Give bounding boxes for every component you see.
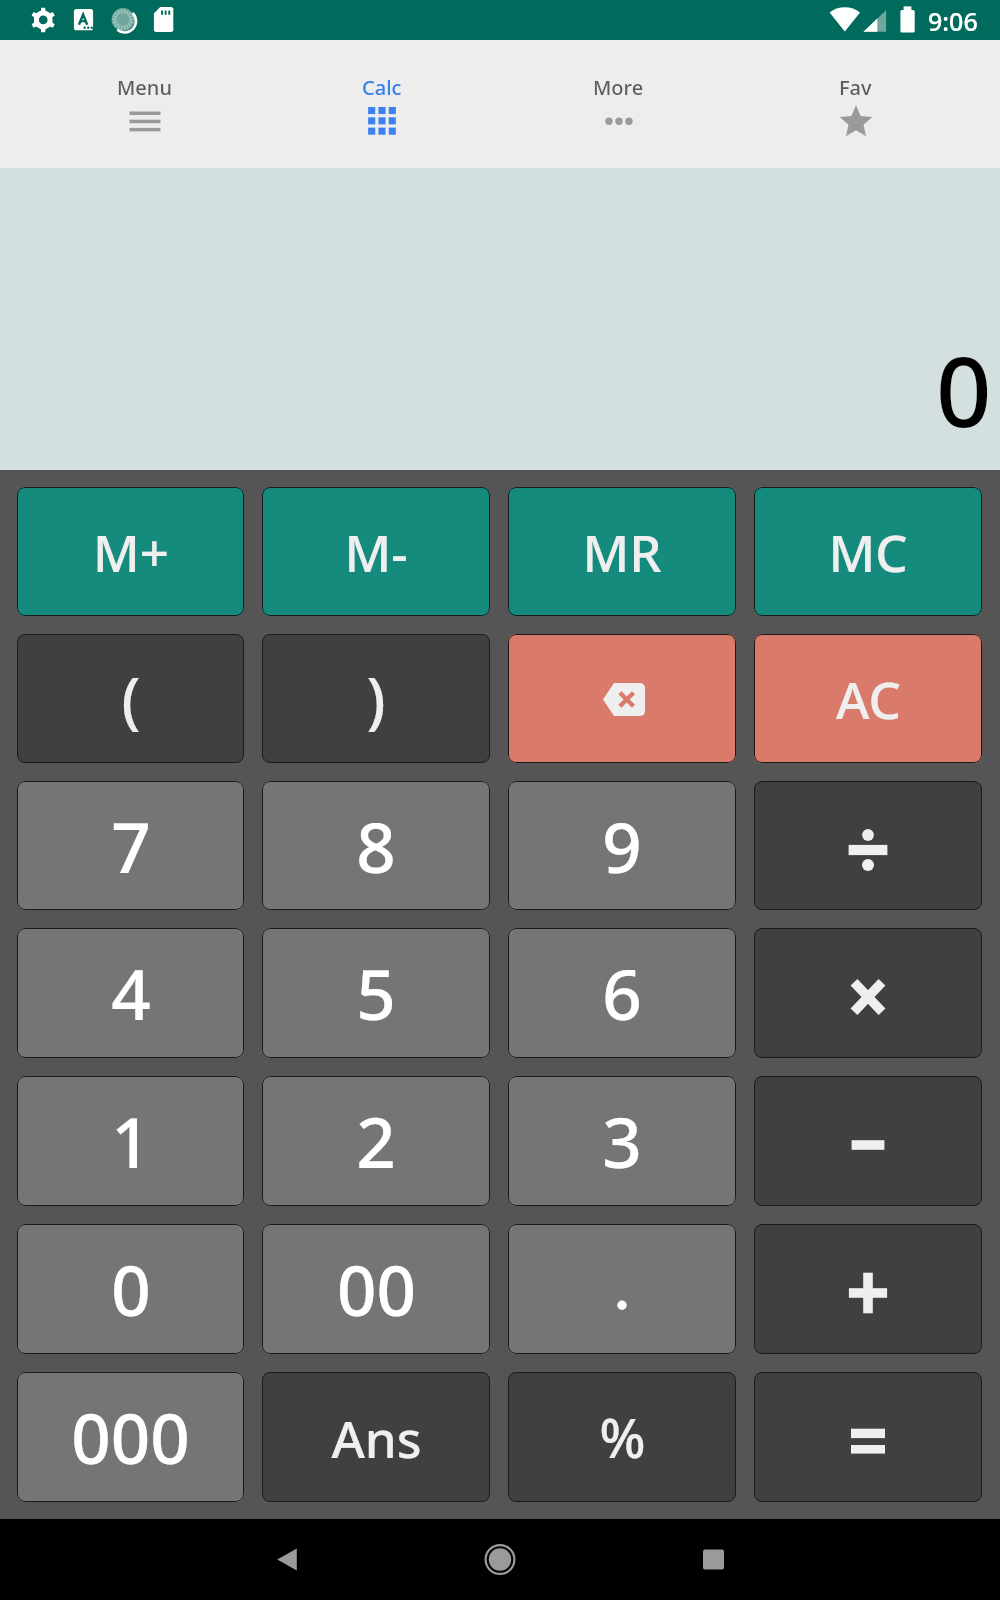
button[interactable]: M-: [262, 487, 490, 616]
button[interactable]: MR: [508, 487, 736, 616]
staticText: 6: [602, 946, 642, 1040]
button[interactable]: Backspace: [508, 634, 736, 763]
button[interactable]: 000: [17, 1372, 244, 1502]
staticText: 4: [111, 946, 151, 1040]
button[interactable]: 7: [17, 781, 244, 910]
staticText: Calc: [362, 74, 402, 101]
staticText: 8: [356, 799, 396, 893]
button[interactable]: Back: [240, 1519, 360, 1600]
staticText: 0: [111, 1242, 151, 1336]
button[interactable]: Divide: [754, 781, 982, 910]
staticText: M+: [93, 517, 169, 586]
staticText: MC: [828, 517, 908, 586]
staticText: MR: [582, 517, 662, 586]
button[interactable]: Multiply: [754, 928, 982, 1058]
staticText: 5: [356, 946, 396, 1040]
button[interactable]: Home: [440, 1519, 560, 1600]
button[interactable]: %: [508, 1372, 736, 1502]
button[interactable]: M+: [17, 487, 244, 616]
button[interactable]: (: [17, 634, 244, 763]
button[interactable]: Equals: [754, 1372, 982, 1502]
staticText: %: [599, 1400, 646, 1474]
staticText: AC: [836, 664, 901, 733]
button[interactable]: MC: [754, 487, 982, 616]
staticText: (: [121, 657, 141, 740]
button[interactable]: 00: [262, 1224, 490, 1354]
button[interactable]: 0: [17, 1224, 244, 1354]
staticText: 0: [936, 323, 992, 455]
button[interactable]: 5: [262, 928, 490, 1058]
button[interactable]: Decimal point: [508, 1224, 736, 1354]
staticText: Menu: [117, 74, 172, 101]
button[interactable]: 1: [17, 1076, 244, 1206]
staticText: M-: [344, 517, 408, 586]
button[interactable]: Recents: [653, 1519, 773, 1600]
button[interactable]: AC: [754, 634, 982, 763]
button[interactable]: 3: [508, 1076, 736, 1206]
button[interactable]: 9: [508, 781, 736, 910]
button[interactable]: ): [262, 634, 490, 763]
button[interactable]: Calc: [263, 40, 500, 168]
staticText: 3: [602, 1094, 642, 1188]
button[interactable]: 8: [262, 781, 490, 910]
staticText: 9:06: [928, 4, 978, 38]
button[interactable]: 4: [17, 928, 244, 1058]
button[interactable]: Ans: [262, 1372, 490, 1502]
button[interactable]: Menu: [26, 40, 263, 168]
staticText: ): [366, 657, 386, 740]
button[interactable]: 2: [262, 1076, 490, 1206]
staticText: 000: [71, 1390, 190, 1484]
button[interactable]: More: [500, 40, 737, 168]
button[interactable]: Fav: [737, 40, 974, 168]
button[interactable]: 6: [508, 928, 736, 1058]
staticText: 2: [356, 1094, 396, 1188]
button[interactable]: Subtract: [754, 1076, 982, 1206]
staticText: Ans: [331, 1403, 422, 1472]
staticText: 9: [602, 799, 642, 893]
staticText: Fav: [839, 74, 872, 101]
button[interactable]: Add: [754, 1224, 982, 1354]
staticText: More: [593, 74, 644, 101]
staticText: 00: [337, 1242, 416, 1336]
staticText: 7: [111, 799, 151, 893]
staticText: 1: [111, 1094, 151, 1188]
